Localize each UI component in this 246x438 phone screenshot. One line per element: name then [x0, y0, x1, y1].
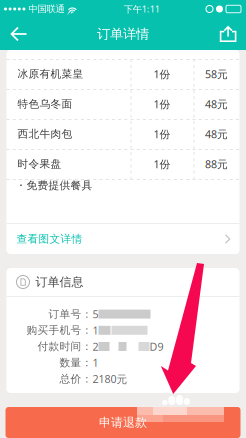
staticText: 冰原有机菜皇: [17, 67, 83, 80]
staticText: 付款时间：: [37, 340, 92, 353]
staticText: D9: [149, 339, 163, 354]
staticText: 特色乌冬面: [17, 97, 72, 110]
staticText: 西北牛肉包: [17, 127, 72, 140]
button[interactable]: Back: [0, 18, 40, 50]
staticText: 时令果盘: [17, 157, 61, 170]
button[interactable]: 查看图文详情: [6, 224, 239, 254]
staticText: 订单信息: [35, 275, 83, 289]
staticText: 订单详情: [97, 26, 149, 42]
staticText: 48元: [205, 97, 228, 111]
staticText: 2180元: [92, 372, 127, 386]
button[interactable]: Share: [208, 18, 246, 50]
staticText: 1: [92, 323, 98, 337]
staticText: 1: [92, 356, 98, 370]
staticText: 数量：: [59, 356, 92, 369]
staticText: 1份: [153, 97, 170, 111]
button[interactable]: 申请退款: [5, 407, 240, 438]
staticText: 总价：: [59, 372, 92, 385]
staticText: 订单号：: [48, 307, 92, 321]
staticText: 下午1:11: [124, 3, 160, 15]
staticText: 中国联通: [28, 3, 64, 15]
staticText: 5: [92, 307, 98, 321]
staticText: 购买手机号：: [26, 324, 92, 337]
staticText: 2: [92, 339, 98, 354]
staticText: 1份: [153, 67, 170, 81]
staticText: 1份: [153, 157, 170, 171]
staticText: 1份: [153, 127, 170, 141]
staticText: 申请退款: [99, 415, 147, 430]
staticText: ・免费提供餐具: [15, 179, 92, 192]
staticText: 58元: [205, 67, 228, 81]
staticText: 88元: [205, 157, 228, 171]
staticText: 查看图文详情: [16, 232, 82, 245]
staticText: 48元: [205, 127, 228, 141]
